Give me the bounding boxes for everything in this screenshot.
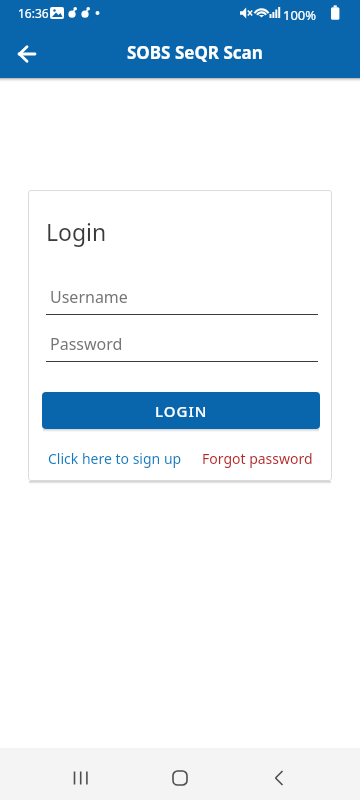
button[interactable] [8, 38, 48, 70]
button[interactable]: Click here to sign up [48, 449, 182, 468]
button[interactable]: Forgot password [202, 449, 313, 468]
staticText: Login [46, 216, 107, 247]
staticText: SOBS SeQR Scan [127, 41, 263, 64]
staticText: Username [50, 286, 128, 308]
staticText: 100% [283, 6, 317, 24]
button[interactable] [58, 756, 104, 800]
button[interactable] [256, 756, 302, 800]
staticText: Password [50, 333, 123, 355]
button[interactable]: LOGIN [42, 392, 320, 429]
staticText: Forgot password [202, 449, 313, 468]
staticText: Click here to sign up [48, 449, 182, 468]
staticText: 16:36 [18, 5, 49, 21]
button[interactable] [46, 323, 318, 363]
staticText: LOGIN [155, 401, 208, 421]
button[interactable] [157, 756, 203, 800]
button[interactable] [46, 276, 318, 316]
